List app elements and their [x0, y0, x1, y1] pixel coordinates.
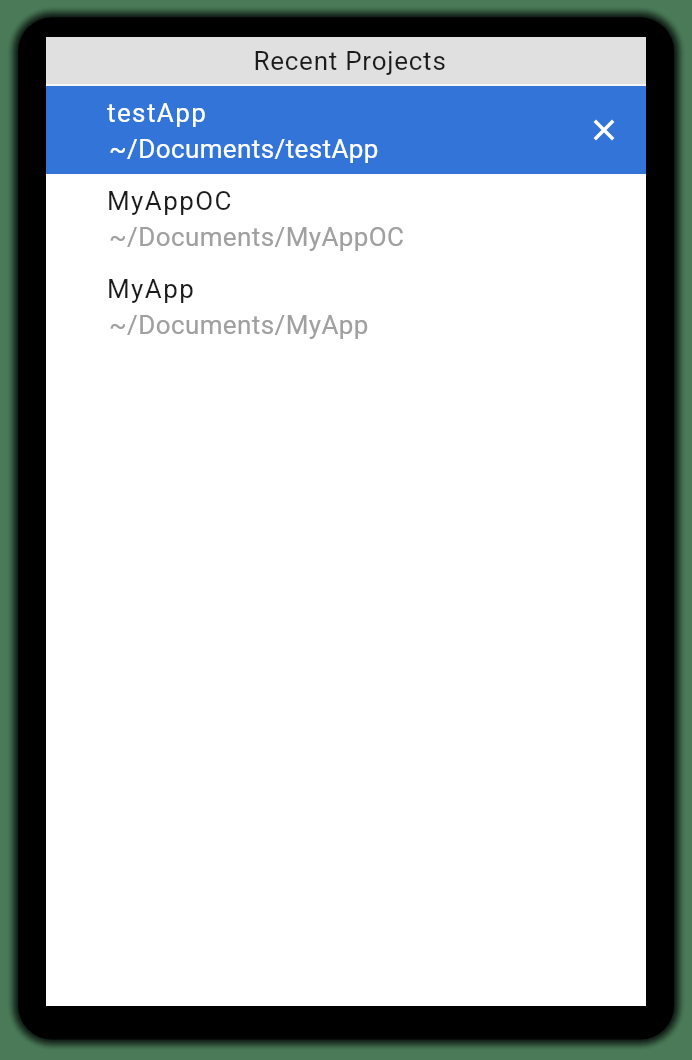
- staticText: testApp: [107, 98, 208, 128]
- staticText: ~/Documents/MyAppOC: [109, 222, 405, 252]
- button[interactable]: MyApp: [46, 262, 646, 350]
- button[interactable]: Remove from recent projects: [580, 106, 628, 154]
- button[interactable]: testApp: [46, 86, 646, 174]
- staticText: MyApp: [107, 274, 196, 304]
- staticText: MyAppOC: [107, 186, 233, 216]
- staticText: Recent Projects: [253, 46, 447, 76]
- button[interactable]: MyAppOC: [46, 174, 646, 262]
- staticText: ~/Documents/MyApp: [109, 310, 369, 340]
- staticText: ~/Documents/testApp: [109, 134, 379, 164]
